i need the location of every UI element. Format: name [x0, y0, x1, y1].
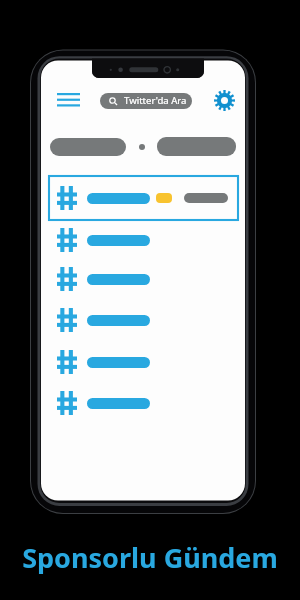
staticText: Sponsorlu Gündem [0, 539, 300, 576]
button[interactable]: Twitter'da Ara [100, 93, 192, 109]
button[interactable] [50, 138, 126, 156]
button[interactable] [49, 381, 238, 425]
button[interactable] [49, 257, 238, 301]
button[interactable] [157, 137, 236, 156]
button[interactable] [49, 176, 238, 220]
button[interactable] [49, 298, 238, 342]
staticText: Twitter'da Ara [124, 94, 187, 107]
button[interactable]: Settings [214, 90, 235, 111]
button[interactable]: Menu [57, 93, 81, 109]
button[interactable] [49, 340, 238, 384]
button[interactable] [49, 218, 238, 262]
